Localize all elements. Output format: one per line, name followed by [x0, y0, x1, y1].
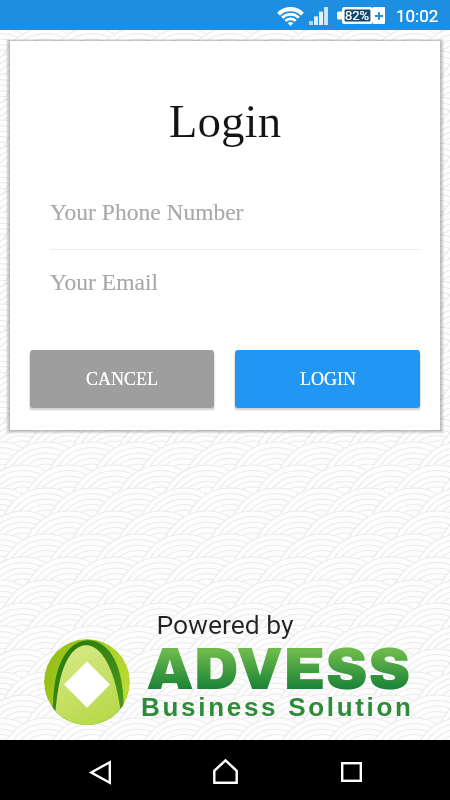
staticText: LOGIN — [300, 369, 356, 389]
button[interactable]: Home — [201, 747, 249, 795]
button[interactable]: Back — [76, 748, 124, 796]
staticText: Your Phone Number — [50, 199, 244, 225]
button[interactable]: CANCEL — [30, 350, 214, 408]
staticText: 10:02 — [396, 6, 439, 26]
staticText: 82% — [345, 8, 370, 23]
staticText: CANCEL — [86, 369, 158, 389]
staticText: Powered by — [0, 609, 450, 640]
staticText: Business Solution — [141, 692, 414, 721]
button[interactable]: LOGIN — [235, 350, 420, 408]
staticText: Login — [10, 95, 440, 147]
staticText: Your Email — [50, 269, 158, 295]
staticText: ADVESS — [147, 637, 411, 701]
button[interactable]: Recent apps — [327, 748, 375, 796]
